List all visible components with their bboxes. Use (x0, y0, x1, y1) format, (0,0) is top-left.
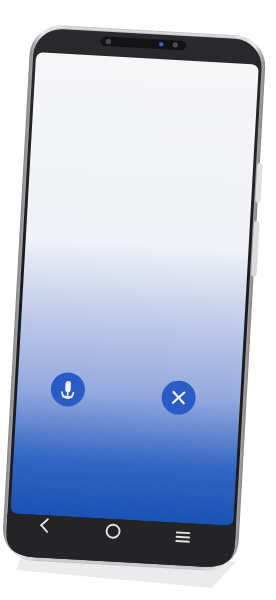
button[interactable]: Back (43, 516, 71, 544)
button[interactable]: Home (112, 518, 140, 546)
button[interactable]: Cancel (165, 377, 203, 415)
button[interactable]: Recents (182, 520, 210, 548)
button[interactable]: Start voice input (54, 375, 92, 413)
